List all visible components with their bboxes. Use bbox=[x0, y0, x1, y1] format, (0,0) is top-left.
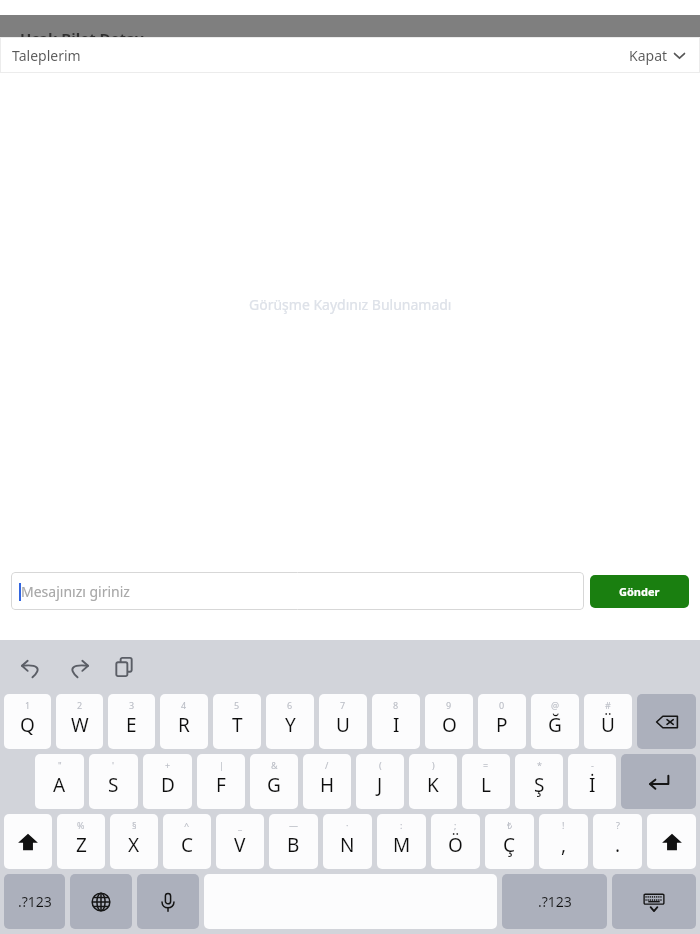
staticText: ) bbox=[432, 759, 435, 771]
staticText: = bbox=[483, 759, 489, 771]
staticText: İ bbox=[589, 772, 596, 798]
button[interactable]: — bbox=[269, 814, 318, 869]
button[interactable]: % bbox=[57, 814, 105, 869]
button[interactable]: / bbox=[303, 754, 351, 809]
button[interactable]: = bbox=[462, 754, 510, 809]
button[interactable]: 5 bbox=[213, 694, 261, 749]
button[interactable]: 0 bbox=[478, 694, 526, 749]
button[interactable]: 9 bbox=[425, 694, 473, 749]
staticText: X bbox=[128, 832, 140, 858]
button[interactable]: ) bbox=[409, 754, 457, 809]
button[interactable]: ; bbox=[431, 814, 480, 869]
button[interactable]: .?123 bbox=[4, 874, 65, 929]
staticText: ! bbox=[562, 819, 565, 831]
staticText: Ö bbox=[448, 832, 463, 858]
staticText: 4 bbox=[181, 699, 187, 711]
button[interactable]: # bbox=[584, 694, 632, 749]
button[interactable]: + bbox=[143, 754, 192, 809]
button[interactable]: Mesajınızı giriniz bbox=[11, 572, 584, 610]
staticText: P bbox=[496, 712, 508, 738]
button[interactable]: & bbox=[250, 754, 298, 809]
button[interactable]: 8 bbox=[372, 694, 420, 749]
staticText: : bbox=[400, 819, 403, 831]
staticText: _ bbox=[238, 819, 242, 831]
button[interactable]: · bbox=[323, 814, 372, 869]
staticText: W bbox=[71, 712, 89, 738]
staticText: % bbox=[77, 819, 85, 831]
button[interactable]: ( bbox=[356, 754, 404, 809]
button[interactable]: Kapat bbox=[624, 41, 690, 70]
button[interactable]: ' bbox=[89, 754, 138, 809]
staticText: / bbox=[325, 759, 329, 771]
staticText: Görüşme Kaydınız Bulunamadı bbox=[249, 295, 452, 314]
button[interactable]: 3 bbox=[108, 694, 155, 749]
staticText: Ç bbox=[503, 832, 516, 858]
staticText: ( bbox=[379, 759, 382, 771]
staticText: A bbox=[53, 772, 66, 798]
button[interactable]: : bbox=[377, 814, 426, 869]
staticText: T bbox=[232, 712, 243, 738]
staticText: Gönder bbox=[619, 584, 660, 599]
staticText: 9 bbox=[446, 699, 452, 711]
staticText: Q bbox=[20, 712, 35, 738]
staticText: ? bbox=[616, 819, 620, 831]
button[interactable]: * bbox=[515, 754, 563, 809]
button[interactable]: 4 bbox=[160, 694, 208, 749]
button[interactable]: Voice input bbox=[137, 874, 199, 929]
button[interactable]: _ bbox=[216, 814, 264, 869]
staticText: S bbox=[108, 772, 119, 798]
staticText: Ş bbox=[534, 772, 545, 798]
staticText: H bbox=[320, 772, 335, 798]
staticText: K bbox=[427, 772, 439, 798]
button[interactable]: Redo bbox=[62, 651, 94, 683]
button[interactable]: Shift bbox=[4, 814, 52, 869]
staticText: R bbox=[178, 712, 190, 738]
staticText: . bbox=[615, 832, 621, 858]
button[interactable]: .?123 bbox=[502, 874, 607, 929]
button[interactable]: Change language bbox=[70, 874, 132, 929]
staticText: .?123 bbox=[18, 892, 52, 911]
staticText: E bbox=[126, 712, 137, 738]
staticText: 6 bbox=[287, 699, 293, 711]
button[interactable]: ? bbox=[593, 814, 642, 869]
button[interactable]: ₺ bbox=[485, 814, 534, 869]
staticText: Y bbox=[285, 712, 296, 738]
staticText: * bbox=[537, 759, 542, 771]
staticText: " bbox=[58, 759, 62, 771]
staticText: Taleplerim bbox=[12, 46, 81, 65]
staticText: · bbox=[346, 819, 349, 831]
staticText: 3 bbox=[129, 699, 135, 711]
button[interactable]: Gönder bbox=[590, 575, 689, 608]
staticText: 1 bbox=[25, 699, 31, 711]
staticText: ; bbox=[454, 819, 457, 831]
button[interactable]: Undo bbox=[16, 651, 48, 683]
button[interactable]: Shift bbox=[647, 814, 696, 869]
staticText: I bbox=[393, 712, 400, 738]
staticText: — bbox=[289, 819, 299, 831]
button[interactable]: ! bbox=[539, 814, 588, 869]
button[interactable]: 6 bbox=[266, 694, 314, 749]
button[interactable]: § bbox=[110, 814, 158, 869]
button[interactable]: ^ bbox=[163, 814, 211, 869]
button[interactable]: Backspace bbox=[637, 694, 696, 749]
button[interactable]: " bbox=[35, 754, 84, 809]
staticText: 2 bbox=[77, 699, 83, 711]
button[interactable]: Hide keyboard bbox=[612, 874, 696, 929]
staticText: # bbox=[605, 699, 611, 711]
staticText: Mesajınızı giriniz bbox=[21, 582, 130, 601]
staticText: N bbox=[340, 832, 355, 858]
button[interactable]: @ bbox=[531, 694, 579, 749]
button[interactable]: 1 bbox=[4, 694, 51, 749]
staticText: O bbox=[442, 712, 457, 738]
button[interactable]: - bbox=[568, 754, 616, 809]
button[interactable]: 2 bbox=[56, 694, 103, 749]
button[interactable]: Clipboard bbox=[108, 651, 140, 683]
button[interactable]: | bbox=[197, 754, 245, 809]
staticText: Uçak Bilet Detay bbox=[20, 28, 144, 48]
staticText: 7 bbox=[340, 699, 346, 711]
staticText: § bbox=[132, 819, 137, 831]
button[interactable]: 7 bbox=[319, 694, 367, 749]
button[interactable]: Enter bbox=[621, 754, 696, 809]
staticText: M bbox=[393, 832, 411, 858]
